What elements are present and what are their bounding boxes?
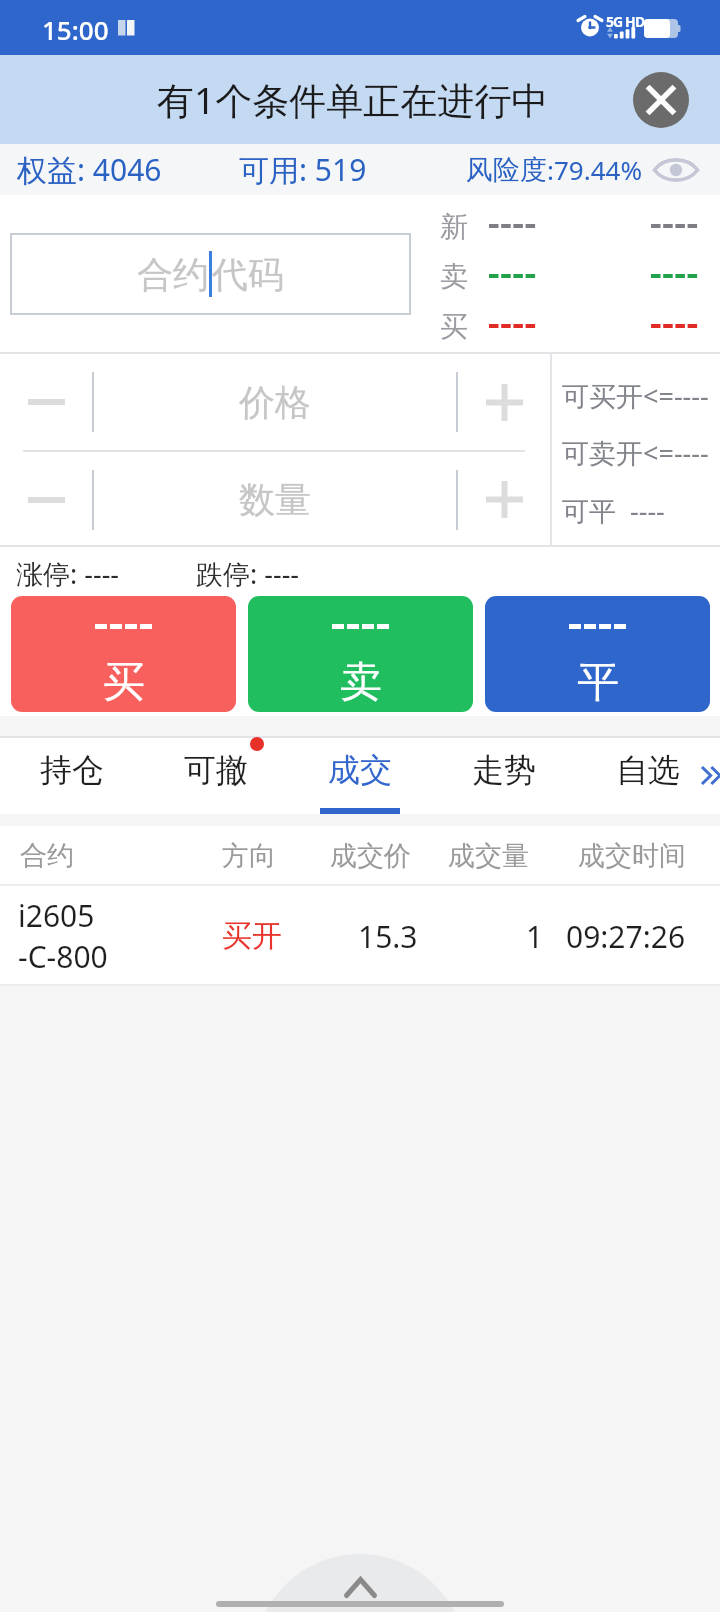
staticText: -C-800 [18,936,108,977]
button[interactable]: 减少 [0,452,92,547]
button[interactable]: 可撤 [144,736,288,814]
staticText: 成交价 [330,839,411,873]
staticText: 买开 [222,917,282,955]
staticText: 15:00 [42,12,109,47]
staticText: 跌停: ---- [196,555,300,592]
staticText: 自选 [616,750,680,790]
staticText: 可用: 519 [239,149,367,190]
button[interactable]: 持仓 [0,736,144,814]
staticText: 风险度 [466,153,547,187]
staticText: 卖 [440,259,468,293]
staticText: 可撤 [184,750,248,790]
staticText: 合约 [20,839,74,873]
button[interactable]: 增加 [458,354,550,450]
button[interactable]: 价格 [94,354,456,450]
staticText: 买 [103,656,145,709]
staticText: 1 [526,916,544,957]
staticText: 涨停: ---- [16,555,120,592]
staticText: 可卖开<=---- [562,434,709,471]
staticText: 价格 [239,380,311,425]
button[interactable]: 卖 [248,596,473,712]
staticText: 权益: 4046 [17,149,162,190]
button[interactable]: 更多 [680,736,720,814]
staticText: 成交量 [448,839,529,873]
staticText: 走势 [472,750,536,790]
staticText: 可买开<=---- [562,377,709,414]
staticText: 15.3 [358,916,418,957]
staticText: 平 [577,656,619,709]
button[interactable]: 合约 [10,233,411,315]
button[interactable]: 走势 [432,736,576,814]
staticText: 方向 [222,839,276,873]
staticText: 新 [440,209,468,243]
staticText: 有1个条件单正在进行中 [157,74,549,125]
button[interactable]: 数量 [94,452,456,547]
button[interactable]: 减少 [0,354,92,450]
staticText: 数量 [239,477,311,522]
staticText: 代码 [212,252,284,297]
staticText: 卖 [340,656,382,709]
staticText: 5G HD [606,12,645,31]
button[interactable]: i2605 [0,886,720,986]
staticText: 买 [440,309,468,343]
staticText: 成交 [328,750,392,790]
staticText: 09:27:26 [566,916,686,957]
staticText: 合约 [137,252,209,297]
button[interactable]: 买 [11,596,236,712]
staticText: i2605 [18,895,95,936]
button[interactable]: 隐藏资金 [652,146,700,194]
staticText: :79.44% [547,152,643,187]
button[interactable]: 平 [485,596,710,712]
button[interactable]: 自选 [576,736,720,814]
staticText: 成交时间 [578,839,686,873]
button[interactable]: 增加 [458,452,550,547]
staticText: 持仓 [40,750,104,790]
button[interactable]: 关闭 [633,72,689,128]
staticText: 可平 ---- [562,492,665,529]
button[interactable]: 成交 [288,736,432,814]
